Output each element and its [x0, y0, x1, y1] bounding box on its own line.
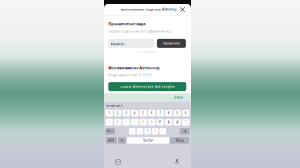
- staticText: #+=: [107, 129, 113, 133]
- button[interactable]: 2: [114, 110, 121, 116]
- button[interactable]: 6: [148, 110, 155, 116]
- button[interactable]: Применить: [157, 39, 186, 48]
- staticText: «КОМПЛЕКТ»: [106, 104, 122, 107]
- button[interactable]: 7: [157, 110, 164, 116]
- staticText: /: [117, 120, 118, 124]
- staticText: !: [155, 129, 156, 133]
- staticText: 7: [159, 111, 161, 115]
- button[interactable]: 9: [174, 110, 181, 116]
- staticText: Общая сумма к оплате 10 820 ₽: [108, 74, 152, 77]
- staticText: 5: [142, 111, 144, 115]
- staticText: Применить: [163, 42, 180, 45]
- staticText: Код: [111, 41, 114, 42]
- button[interactable]: 5: [140, 110, 147, 116]
- button[interactable]: #+=: [105, 128, 115, 135]
- staticText: @: [176, 120, 178, 124]
- staticText: 6: [151, 111, 153, 115]
- button[interactable]: ⌫: [180, 128, 190, 135]
- staticText: Использование кода или Airmoney: [121, 8, 176, 11]
- staticText: ₽: [159, 120, 161, 124]
- button[interactable]: 0: [182, 110, 189, 116]
- button[interactable]: 1: [105, 110, 113, 116]
- button[interactable]: (: [140, 119, 147, 125]
- button[interactable]: !: [152, 128, 158, 135]
- button[interactable]: ": [182, 119, 189, 125]
- button[interactable]: Готово: [173, 96, 191, 99]
- staticText: Использование Airmoney: [108, 65, 159, 70]
- staticText: АБВ: [108, 139, 114, 142]
- button[interactable]: ;: [131, 119, 138, 125]
- staticText: 4: [134, 111, 136, 115]
- staticText: 2: [117, 111, 119, 115]
- staticText: ⌫: [183, 130, 187, 133]
- button[interactable]: ☺: [118, 137, 126, 144]
- button[interactable]: Ввод: [170, 137, 189, 144]
- staticText: ;: [134, 120, 135, 124]
- staticText: ☺: [120, 139, 123, 142]
- button[interactable]: ,: [137, 128, 143, 135]
- staticText: ?: [147, 129, 148, 133]
- staticText: 1: [108, 111, 110, 115]
- staticText: Готово: [173, 96, 183, 99]
- staticText: -: [109, 120, 110, 124]
- button[interactable]: ₽: [157, 119, 164, 125]
- button[interactable]: @: [174, 119, 181, 125]
- staticText: 0: [185, 111, 187, 115]
- button[interactable]: /: [114, 119, 121, 125]
- staticText: 9: [176, 111, 178, 115]
- staticText: Списать Airmoney для этой покупки: [120, 85, 175, 88]
- button[interactable]: 3: [122, 110, 130, 116]
- button[interactable]: Закрыть: [178, 5, 186, 13]
- staticText: Применение кода: [108, 21, 145, 26]
- staticText: 3: [125, 111, 127, 115]
- button[interactable]: 8: [165, 110, 172, 116]
- button[interactable]: Сменить клавиатуру: [115, 159, 121, 165]
- button[interactable]: &: [165, 119, 172, 125]
- staticText: &: [168, 120, 170, 124]
- button[interactable]: Списать Airmoney для этой покупки: [108, 82, 186, 91]
- staticText: ): [151, 120, 152, 124]
- button[interactable]: Как получить промокод: [108, 50, 186, 55]
- staticText: 8: [168, 111, 170, 115]
- button[interactable]: -: [105, 119, 113, 125]
- staticText: ,: [139, 129, 140, 133]
- button[interactable]: :: [122, 119, 130, 125]
- staticText: Введите подарочный или реферальный код: [108, 30, 171, 33]
- staticText: .: [132, 129, 133, 133]
- button[interactable]: ?: [144, 128, 151, 135]
- staticText: ": [185, 120, 186, 124]
- staticText: (: [143, 120, 144, 124]
- button[interactable]: АБВ: [106, 137, 117, 144]
- staticText: Пробел: [143, 139, 154, 142]
- button[interactable]: .: [129, 128, 135, 135]
- button[interactable]: 4: [131, 110, 138, 116]
- button[interactable]: ): [148, 119, 155, 125]
- button[interactable]: Пробел: [127, 137, 169, 144]
- staticText: Как получить промокод: [138, 51, 157, 53]
- staticText: :: [126, 120, 127, 124]
- staticText: ANGARSK7: [111, 42, 126, 46]
- staticText: Ввод: [176, 139, 184, 142]
- button[interactable]: ': [159, 128, 166, 135]
- button[interactable]: Диктовка: [174, 159, 180, 165]
